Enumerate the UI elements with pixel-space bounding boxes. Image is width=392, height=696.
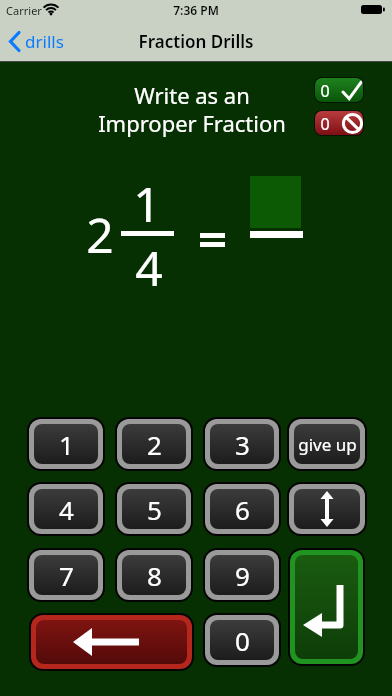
staticText: Carrier [6, 3, 42, 18]
staticText: Fraction Drills [0, 30, 392, 53]
button[interactable]: 4 [34, 489, 98, 529]
button[interactable] [294, 489, 360, 529]
staticText: 2 [86, 202, 114, 267]
staticText: 7 [59, 558, 74, 593]
staticText: 0 [235, 623, 250, 658]
staticText: 8 [147, 558, 162, 593]
staticText: 4 [59, 492, 74, 527]
staticText: 9 [235, 558, 250, 593]
staticText: 0 [320, 113, 330, 135]
button[interactable]: 0 [315, 78, 363, 102]
staticText: Improper Fraction [0, 108, 384, 138]
button[interactable]: give up [294, 424, 360, 464]
button[interactable]: 6 [210, 489, 274, 529]
staticText: 1 [133, 171, 161, 231]
button[interactable]: 5 [122, 489, 186, 529]
button[interactable]: 7 [34, 555, 98, 595]
staticText: 7:36 PM [0, 2, 392, 18]
staticText: 2 [147, 427, 162, 462]
staticText: 6 [235, 492, 250, 527]
button[interactable] [295, 555, 358, 659]
staticText: give up [298, 433, 357, 456]
staticText: 5 [147, 492, 162, 527]
staticText: 0 [320, 80, 330, 102]
button[interactable]: 9 [210, 555, 274, 595]
staticText: drills [25, 30, 64, 53]
button[interactable]: 2 [122, 424, 186, 464]
button[interactable]: 0 [210, 620, 274, 660]
button[interactable]: 3 [210, 424, 274, 464]
staticText: 1 [59, 427, 74, 462]
button[interactable]: 8 [122, 555, 186, 595]
button[interactable]: 0 [315, 111, 363, 135]
staticText: 3 [235, 427, 250, 462]
staticText: Write as an [0, 80, 384, 110]
button[interactable]: 1 [34, 424, 98, 464]
button[interactable] [36, 620, 187, 664]
staticText: 4 [135, 235, 163, 295]
button[interactable]: drills [8, 20, 64, 62]
